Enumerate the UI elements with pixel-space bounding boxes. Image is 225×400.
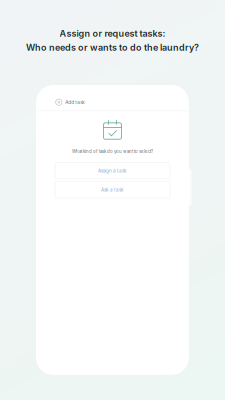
staticText: Ask a task — [101, 187, 124, 192]
button[interactable]: Ask a task — [55, 181, 170, 198]
staticText: Assign a task — [98, 168, 127, 173]
staticText: Who needs or wants to do the laundry? — [26, 42, 199, 53]
staticText: What kind of task do you want to select? — [72, 149, 153, 154]
staticText: Add task — [65, 99, 85, 105]
staticText: Assign or request tasks: — [59, 28, 165, 39]
button[interactable]: Assign a task — [55, 162, 170, 179]
